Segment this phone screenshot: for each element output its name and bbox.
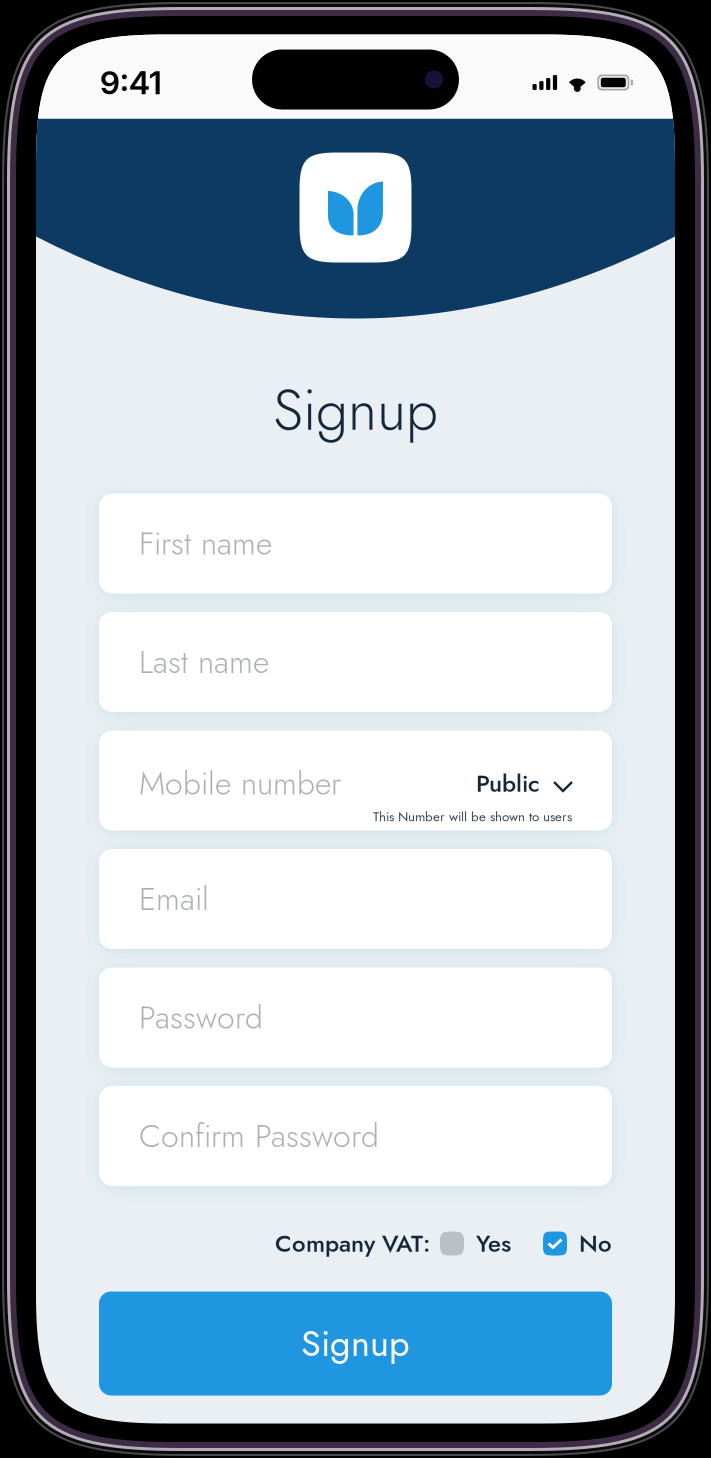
staticText: Confirm Password <box>139 1113 379 1159</box>
button[interactable]: Mobile number <box>99 730 612 830</box>
staticText: Signup <box>273 368 438 451</box>
staticText: Signup <box>301 1317 410 1369</box>
staticText: Public <box>476 766 540 801</box>
staticText: This Number will be shown to users <box>373 807 572 826</box>
staticText: Mobile number <box>139 760 341 807</box>
staticText: 9:41 <box>100 63 162 102</box>
staticText: No <box>579 1226 612 1261</box>
staticText: Email <box>139 876 209 922</box>
button[interactable]: Password <box>99 967 612 1067</box>
button[interactable]: Last name <box>99 612 612 712</box>
staticText: Company VAT: <box>275 1226 430 1261</box>
button[interactable]: Yes <box>440 1226 511 1261</box>
button[interactable]: Email <box>99 849 612 949</box>
button[interactable]: Signup <box>99 1291 612 1395</box>
staticText: Last name <box>139 639 269 685</box>
button[interactable]: No <box>543 1226 612 1261</box>
staticText: Yes <box>476 1226 511 1261</box>
staticText: First name <box>139 520 272 567</box>
button[interactable]: First name <box>99 493 612 593</box>
staticText: Password <box>139 994 263 1041</box>
button[interactable]: Confirm Password <box>99 1086 612 1186</box>
